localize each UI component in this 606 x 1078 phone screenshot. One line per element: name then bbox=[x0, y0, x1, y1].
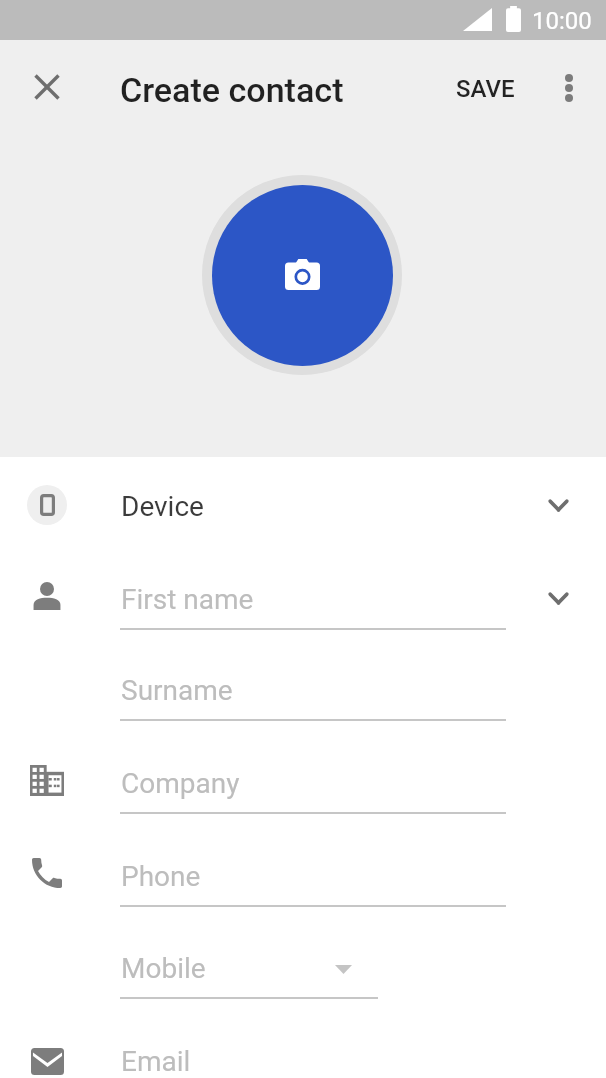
button[interactable]: Mobile bbox=[0, 927, 606, 1019]
button[interactable]: SAVE bbox=[440, 61, 531, 117]
staticText: Mobile bbox=[121, 952, 206, 985]
button[interactable]: Add photo bbox=[202, 175, 402, 375]
button[interactable]: Email bbox=[0, 1020, 606, 1078]
staticText: Phone bbox=[121, 860, 201, 893]
button[interactable]: First name bbox=[0, 558, 606, 650]
button[interactable]: Surname bbox=[0, 649, 606, 741]
staticText: Device bbox=[121, 490, 204, 523]
staticText: 10:00 bbox=[532, 7, 592, 35]
button[interactable]: Phone bbox=[0, 835, 606, 927]
button[interactable]: Company bbox=[0, 742, 606, 834]
button[interactable]: Device bbox=[0, 457, 606, 549]
staticText: Create contact bbox=[120, 70, 344, 110]
staticText: Surname bbox=[121, 674, 233, 707]
staticText: Company bbox=[121, 767, 240, 800]
staticText: SAVE bbox=[456, 75, 515, 103]
staticText: Email bbox=[121, 1045, 191, 1078]
staticText: First name bbox=[121, 583, 254, 616]
button[interactable]: Close bbox=[19, 59, 75, 115]
button[interactable]: More options bbox=[541, 60, 597, 116]
